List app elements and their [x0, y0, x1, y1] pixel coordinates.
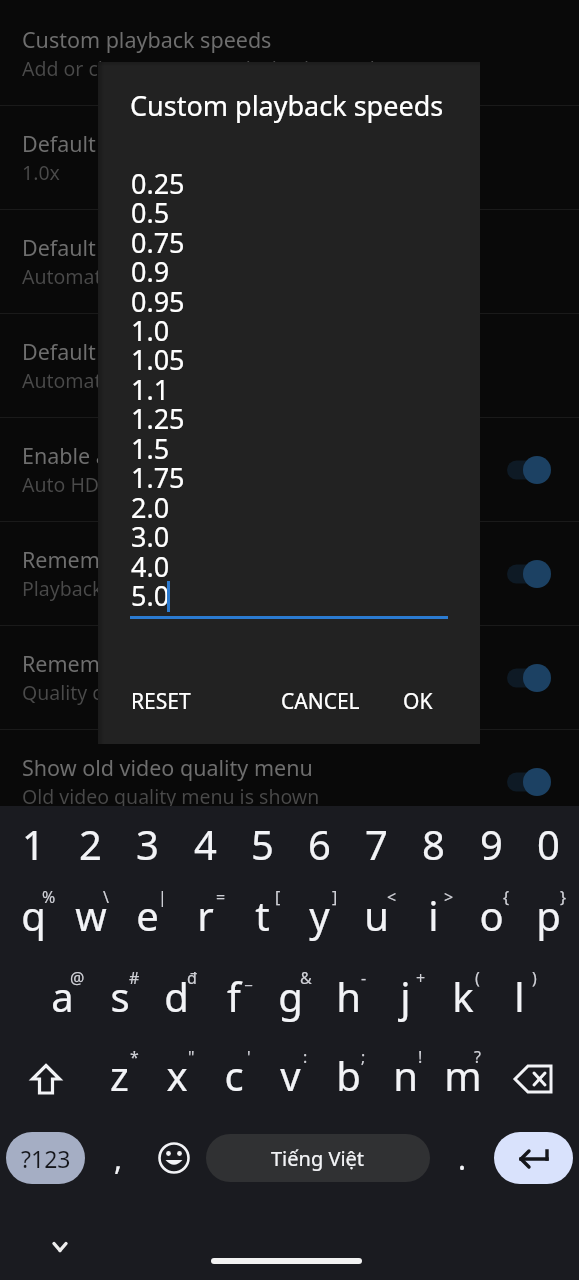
- staticText: i: [428, 888, 439, 942]
- button[interactable]: c: [205, 1039, 262, 1111]
- button[interactable]: Default video quality Wi-Fi: [0, 210, 579, 313]
- staticText: n: [393, 1048, 418, 1102]
- button[interactable]: 9: [463, 808, 520, 880]
- button[interactable]: Backspace: [505, 1043, 561, 1115]
- staticText: q: [21, 888, 46, 942]
- staticText: Tiếng Việt: [271, 1145, 365, 1172]
- staticText: y: [309, 888, 330, 942]
- button[interactable]: g: [262, 960, 319, 1032]
- button[interactable]: a: [34, 960, 91, 1032]
- staticText: s: [110, 969, 130, 1023]
- button[interactable]: Remember video quality: [0, 626, 579, 729]
- button[interactable]: 1: [5, 808, 62, 880]
- button[interactable]: Enter: [494, 1132, 573, 1184]
- button[interactable]: Tiếng Việt: [206, 1134, 430, 1182]
- staticText: j: [400, 969, 411, 1023]
- staticText: l: [514, 969, 525, 1023]
- staticText: u: [364, 888, 389, 942]
- button[interactable]: m: [434, 1039, 491, 1111]
- button[interactable]: q: [5, 879, 62, 951]
- staticText: p: [536, 888, 561, 942]
- staticText: 0.75: [131, 224, 185, 261]
- staticText: ;: [361, 1046, 366, 1068]
- staticText: Old video quality menu is shown: [22, 783, 320, 810]
- staticText: k: [452, 969, 474, 1023]
- staticText: ?: [474, 1046, 481, 1068]
- button[interactable]: Shift: [18, 1044, 74, 1116]
- staticText: CANCEL: [281, 687, 360, 716]
- staticText: m: [444, 1048, 482, 1102]
- staticText: c: [224, 1048, 244, 1102]
- staticText: [: [275, 886, 281, 908]
- staticText: 6: [308, 817, 331, 871]
- button[interactable]: Default video quality mobile: [0, 314, 579, 417]
- button[interactable]: 3: [119, 808, 176, 880]
- button[interactable]: ?123: [6, 1132, 85, 1184]
- staticText: ]: [332, 886, 338, 908]
- button[interactable]: h: [320, 960, 377, 1032]
- button[interactable]: Remember playback speed: [0, 522, 579, 625]
- button[interactable]: e: [119, 879, 176, 951]
- staticText: *: [130, 1046, 139, 1068]
- staticText: -: [361, 967, 367, 989]
- button[interactable]: p: [520, 879, 577, 951]
- button[interactable]: y: [291, 879, 348, 951]
- button[interactable]: b: [320, 1039, 377, 1111]
- button[interactable]: 0: [520, 808, 577, 880]
- staticText: ": [188, 1046, 195, 1068]
- button[interactable]: ,: [93, 1132, 143, 1184]
- staticText: 1.5: [131, 430, 170, 467]
- staticText: %: [42, 886, 56, 908]
- staticText: w: [75, 888, 107, 942]
- staticText: \: [103, 886, 109, 908]
- staticText: 8: [422, 817, 445, 871]
- staticText: d: [164, 969, 189, 1023]
- button[interactable]: o: [463, 879, 520, 951]
- staticText: ?123: [21, 1143, 71, 1174]
- staticText: 4.0: [131, 548, 170, 585]
- button[interactable]: 6: [291, 808, 348, 880]
- staticText: #: [129, 967, 140, 989]
- staticText: z: [110, 1048, 129, 1102]
- button[interactable]: n: [377, 1039, 434, 1111]
- button[interactable]: CANCEL: [269, 677, 372, 726]
- button[interactable]: 2: [62, 808, 119, 880]
- button[interactable]: RESET: [119, 677, 203, 726]
- button[interactable]: t: [234, 879, 291, 951]
- button[interactable]: Custom playback speeds: [0, 2, 579, 105]
- staticText: Enable auto HDR: [22, 441, 193, 470]
- staticText: 2: [79, 817, 102, 871]
- button[interactable]: Show old video quality menu: [0, 730, 579, 833]
- button[interactable]: OK: [391, 677, 445, 726]
- button[interactable]: 7: [348, 808, 405, 880]
- staticText: .: [458, 1138, 467, 1179]
- button[interactable]: .: [437, 1132, 487, 1184]
- button[interactable]: d: [148, 960, 205, 1032]
- button[interactable]: f: [205, 960, 262, 1032]
- button[interactable]: j: [377, 960, 434, 1032]
- staticText: {: [503, 886, 510, 908]
- button[interactable]: i: [405, 879, 462, 951]
- staticText: 1.05: [131, 341, 185, 378]
- staticText: Custom playback speeds: [22, 25, 272, 54]
- button[interactable]: 8: [405, 808, 462, 880]
- button[interactable]: 4: [177, 808, 234, 880]
- button[interactable]: z: [91, 1039, 148, 1111]
- button[interactable]: k: [434, 960, 491, 1032]
- button[interactable]: 5: [234, 808, 291, 880]
- staticText: 1.25: [131, 400, 185, 437]
- button[interactable]: Hide keyboard: [36, 1225, 84, 1269]
- button[interactable]: s: [91, 960, 148, 1032]
- button[interactable]: x: [148, 1039, 205, 1111]
- button[interactable]: v: [262, 1039, 319, 1111]
- staticText: Remember video quality: [22, 649, 269, 678]
- button[interactable]: w: [62, 879, 119, 951]
- button[interactable]: Emoji: [148, 1132, 200, 1184]
- staticText: Show old video quality menu: [22, 753, 313, 782]
- button[interactable]: r: [177, 879, 234, 951]
- button[interactable]: u: [348, 879, 405, 951]
- button[interactable]: Enable auto HDR: [0, 418, 579, 521]
- staticText: t: [255, 888, 270, 942]
- button[interactable]: Default playback speed: [0, 106, 579, 209]
- button[interactable]: l: [491, 960, 548, 1032]
